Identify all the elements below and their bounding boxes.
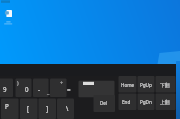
staticText: 下翻	[160, 82, 170, 88]
staticText: PgUp	[140, 82, 152, 88]
staticText: 9	[3, 85, 7, 93]
staticText: _	[47, 88, 50, 95]
staticText: \	[66, 104, 69, 112]
staticText: PgDn	[140, 99, 152, 105]
staticText: 0	[25, 85, 29, 93]
staticText: +	[60, 79, 63, 86]
staticText: -	[38, 85, 40, 93]
staticText: [	[27, 104, 30, 112]
staticText: End	[122, 99, 131, 105]
staticText: Del	[100, 100, 108, 106]
staticText: 上翻	[160, 99, 170, 105]
staticText: )	[17, 79, 19, 86]
staticText: Home	[121, 82, 135, 88]
staticText: P	[5, 102, 9, 110]
staticText: ]	[46, 104, 49, 112]
staticText: =	[67, 85, 71, 93]
